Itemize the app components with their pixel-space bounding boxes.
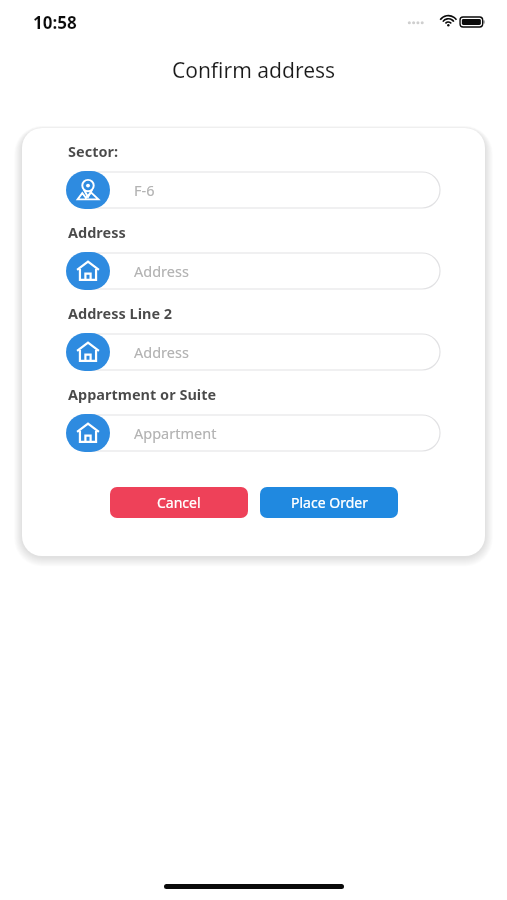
other: Address bbox=[66, 414, 110, 452]
staticText: Address bbox=[68, 222, 126, 242]
staticText: F-6 bbox=[134, 180, 155, 200]
staticText: Appartment or Suite bbox=[68, 384, 217, 404]
staticText: Appartment bbox=[134, 423, 217, 443]
button[interactable]: Cancel bbox=[110, 487, 248, 518]
staticText: Address bbox=[134, 342, 189, 362]
button[interactable]: Address bbox=[68, 252, 440, 290]
staticText: Address bbox=[134, 261, 189, 281]
staticText: 10:58 bbox=[33, 11, 77, 34]
button[interactable]: Place Order bbox=[260, 487, 398, 518]
button[interactable]: Appartment bbox=[68, 414, 440, 452]
other: Sector bbox=[66, 171, 110, 209]
button[interactable]: F-6 bbox=[68, 171, 440, 209]
staticText: Place Order bbox=[291, 493, 368, 512]
button[interactable]: Address bbox=[68, 333, 440, 371]
other: Address bbox=[66, 333, 110, 371]
staticText: Address Line 2 bbox=[68, 303, 173, 323]
staticText: Sector: bbox=[68, 141, 119, 161]
other: Address bbox=[66, 252, 110, 290]
staticText: Cancel bbox=[157, 493, 201, 512]
staticText: Confirm address bbox=[0, 56, 507, 85]
